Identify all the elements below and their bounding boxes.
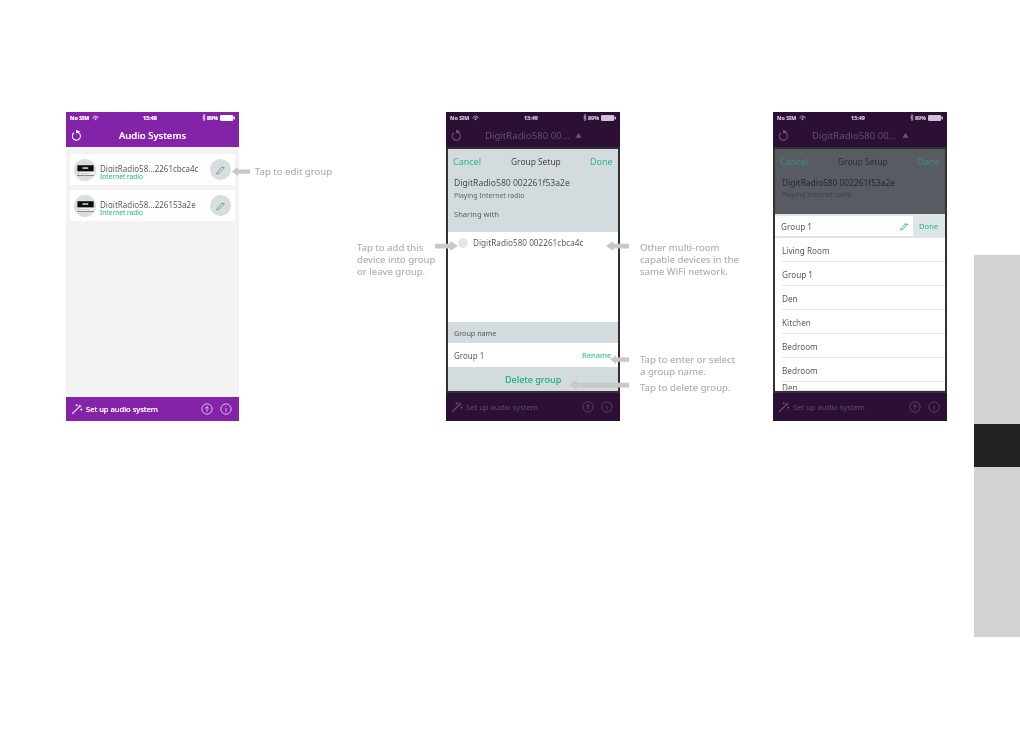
staticText: 13:49	[851, 114, 865, 121]
button[interactable]: Information	[928, 401, 940, 413]
staticText: Group name	[454, 328, 497, 338]
staticText: No SIM	[777, 114, 797, 121]
staticText: Delete group	[505, 373, 562, 385]
staticText: 13:48	[143, 114, 157, 121]
staticText: Done	[917, 155, 940, 167]
staticText: DigitRadio580 002261f53a2e	[454, 177, 570, 189]
button[interactable]: Done	[913, 214, 945, 238]
staticText: No SIM	[450, 114, 470, 121]
staticText: Done	[590, 155, 613, 167]
staticText: Tap to enter or select	[640, 353, 735, 365]
staticText: DigitRadio580 002261f53a2e	[782, 177, 896, 188]
staticText: Bedroom	[782, 341, 818, 352]
staticText: Other multi-room	[640, 241, 720, 253]
button[interactable]: Firmware update	[582, 401, 594, 413]
staticText: Set up audio system	[466, 402, 538, 412]
staticText: Group Setup	[838, 156, 888, 167]
button[interactable]: Rename	[582, 350, 612, 360]
staticText: Audio Systems	[119, 129, 187, 142]
button[interactable]: Done	[912, 152, 945, 170]
button[interactable]: Set up audio system	[66, 397, 239, 421]
staticText: DigitRadio580 002261cbca4c	[473, 237, 584, 248]
button[interactable]: Living Room	[775, 238, 945, 262]
button[interactable]: Refresh	[773, 129, 790, 141]
staticText: Group 1	[454, 350, 485, 361]
button[interactable]: Firmware update	[909, 401, 921, 413]
staticText: 89%	[588, 114, 600, 121]
staticText: Playing Internet radio	[782, 190, 852, 199]
button[interactable]: Delete group	[448, 367, 618, 391]
button[interactable]: Bedroom	[775, 334, 945, 358]
staticText: DigitRadio58...226153a2e	[100, 199, 196, 208]
button[interactable]: Den	[775, 382, 945, 391]
button[interactable]: Group 1	[448, 343, 618, 367]
staticText: Group 1	[782, 269, 814, 280]
button[interactable]: Kitchen	[775, 310, 945, 334]
staticText: DigitRadio580 00...	[485, 129, 570, 142]
staticText: Den	[782, 293, 798, 304]
button[interactable]: Refresh	[446, 129, 463, 141]
button[interactable]: Cancel	[775, 152, 814, 170]
staticText: capable devices in the	[640, 253, 739, 265]
button[interactable]: Edit group	[210, 159, 231, 180]
button[interactable]: Information	[220, 403, 232, 415]
button[interactable]: Group 1	[775, 262, 945, 286]
staticText: DigitRadio580 00...	[812, 129, 897, 142]
staticText: Internet radio	[100, 172, 144, 180]
button[interactable]: DigitRadio58...226153a2e	[70, 190, 235, 221]
button[interactable]: Done	[585, 152, 618, 170]
button[interactable]: Information	[601, 401, 613, 413]
staticText: Tap to add this	[357, 241, 424, 253]
staticText: Sharing with	[454, 209, 499, 219]
staticText: No SIM	[70, 114, 90, 121]
button[interactable]: Cancel	[448, 152, 487, 170]
staticText: same WiFi network.	[640, 265, 729, 277]
staticText: Rename	[582, 350, 612, 360]
staticText: a group name.	[640, 365, 706, 377]
button[interactable]: Set up audio system	[773, 393, 947, 421]
button[interactable]: Group 1	[775, 216, 913, 236]
staticText: Set up audio system	[793, 402, 865, 412]
staticText: Set up audio system	[86, 404, 158, 414]
staticText: or leave group.	[357, 265, 426, 277]
staticText: Cancel	[453, 155, 482, 167]
button[interactable]: Set up audio system	[446, 393, 620, 421]
staticText: 89%	[915, 114, 927, 121]
button[interactable]: DigitRadio58...2261cbca4c	[70, 154, 235, 185]
staticText: Living Room	[782, 245, 830, 256]
staticText: Group 1	[781, 221, 813, 232]
staticText: Den	[782, 382, 798, 391]
staticText: Cancel	[780, 155, 809, 167]
button[interactable]: Firmware update	[201, 403, 213, 415]
button[interactable]: Refresh	[71, 129, 83, 141]
staticText: 89%	[207, 114, 219, 121]
staticText: Tap to edit group	[255, 165, 333, 177]
button[interactable]: Edit group	[210, 195, 231, 216]
staticText: Tap to delete group.	[640, 381, 731, 393]
staticText: DigitRadio58...2261cbca4c	[100, 163, 199, 172]
staticText: Group Setup	[511, 156, 561, 167]
staticText: Done	[919, 221, 939, 231]
button[interactable]: Den	[775, 286, 945, 310]
button[interactable]: Add to group	[448, 232, 618, 253]
staticText: Playing Internet radio	[454, 191, 525, 200]
button[interactable]: Bedroom	[775, 358, 945, 382]
staticText: device into group	[357, 253, 436, 265]
staticText: Internet radio	[100, 208, 144, 216]
staticText: Bedroom	[782, 365, 818, 376]
staticText: 13:49	[524, 114, 538, 121]
staticText: Kitchen	[782, 317, 811, 328]
other: Add to group	[458, 238, 468, 248]
